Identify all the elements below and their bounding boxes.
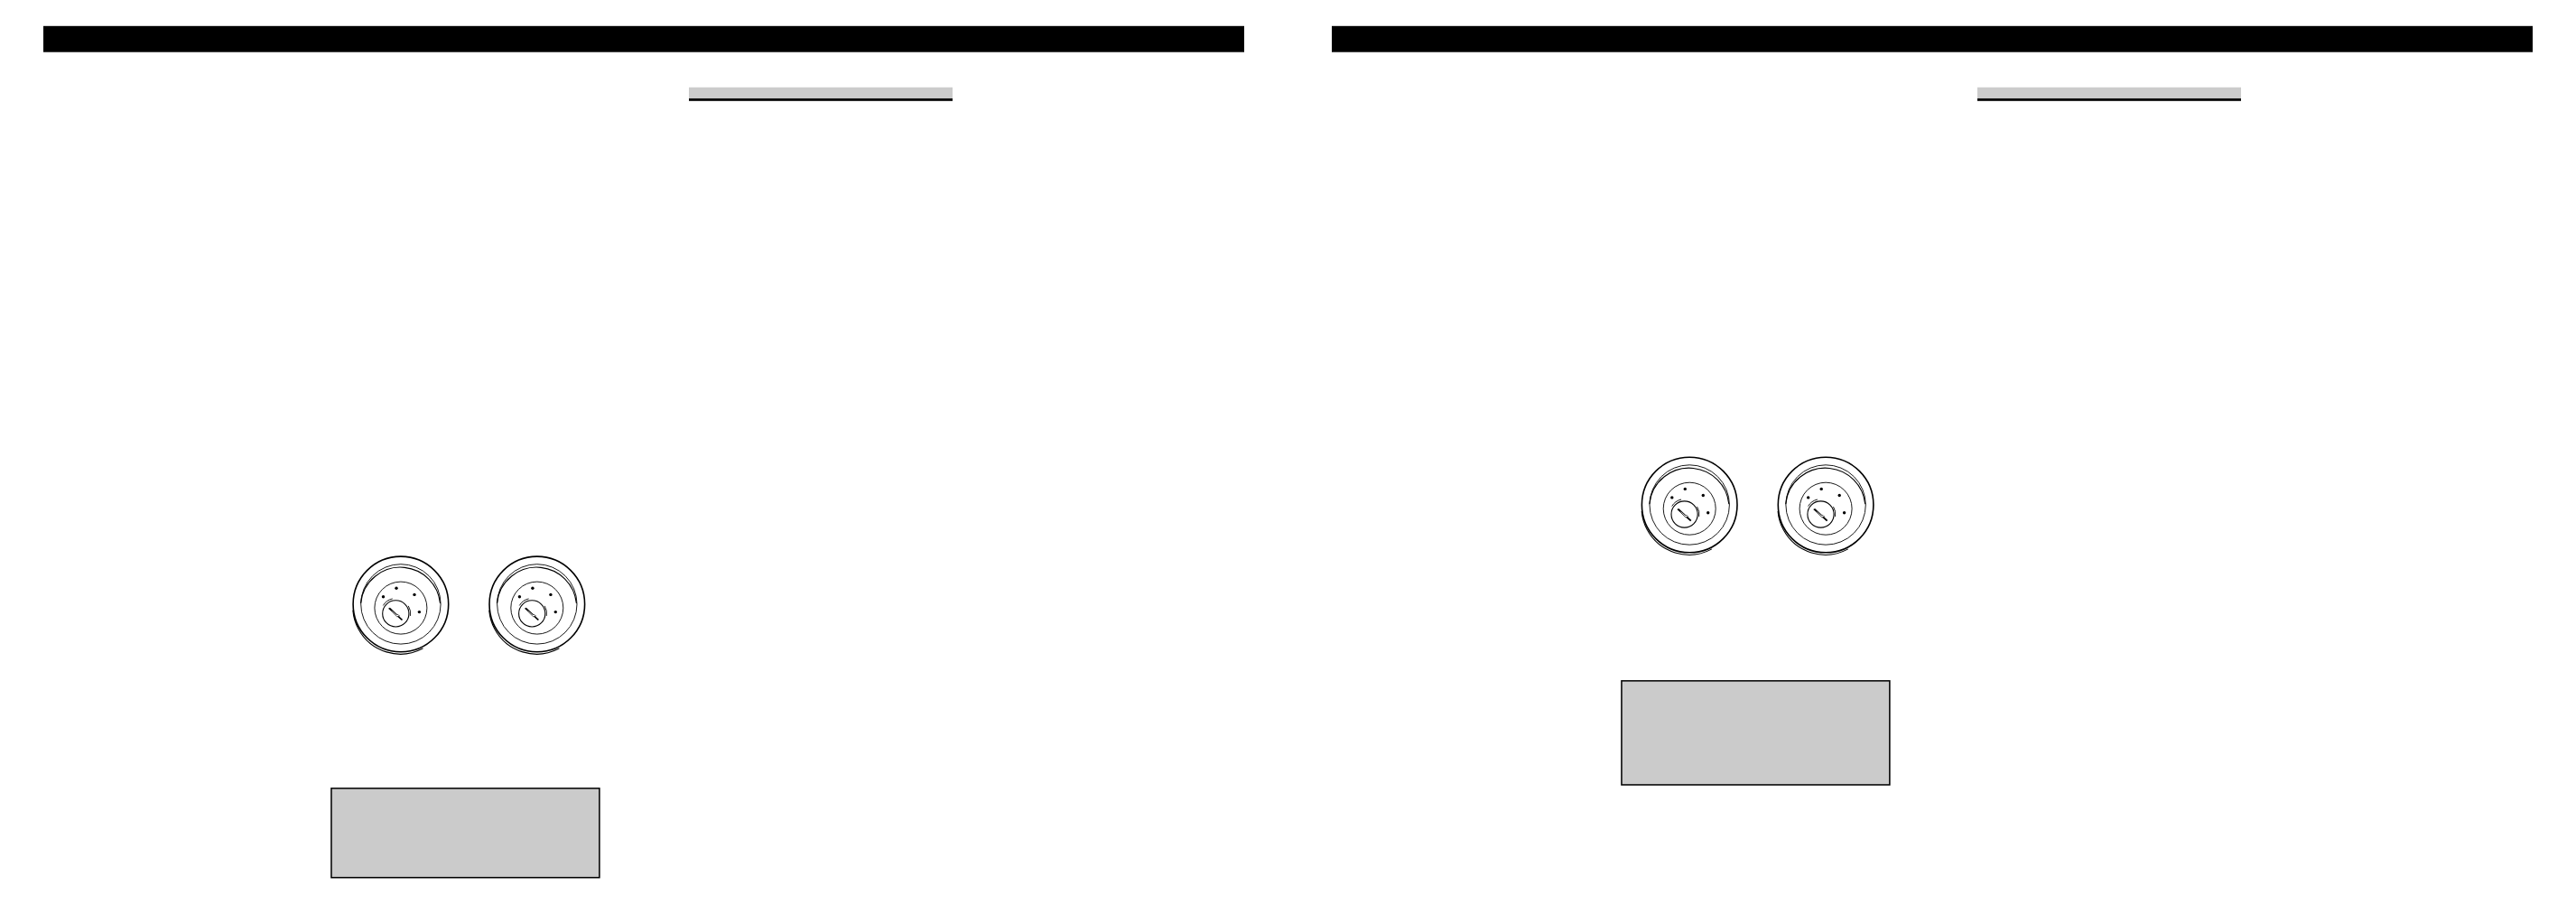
button[interactable]: Scanned drawing sheet 1, brake drum asse…: [0, 0, 1288, 914]
button[interactable]: Scanned drawing sheet 2, brake drum asse…: [1288, 0, 2576, 914]
